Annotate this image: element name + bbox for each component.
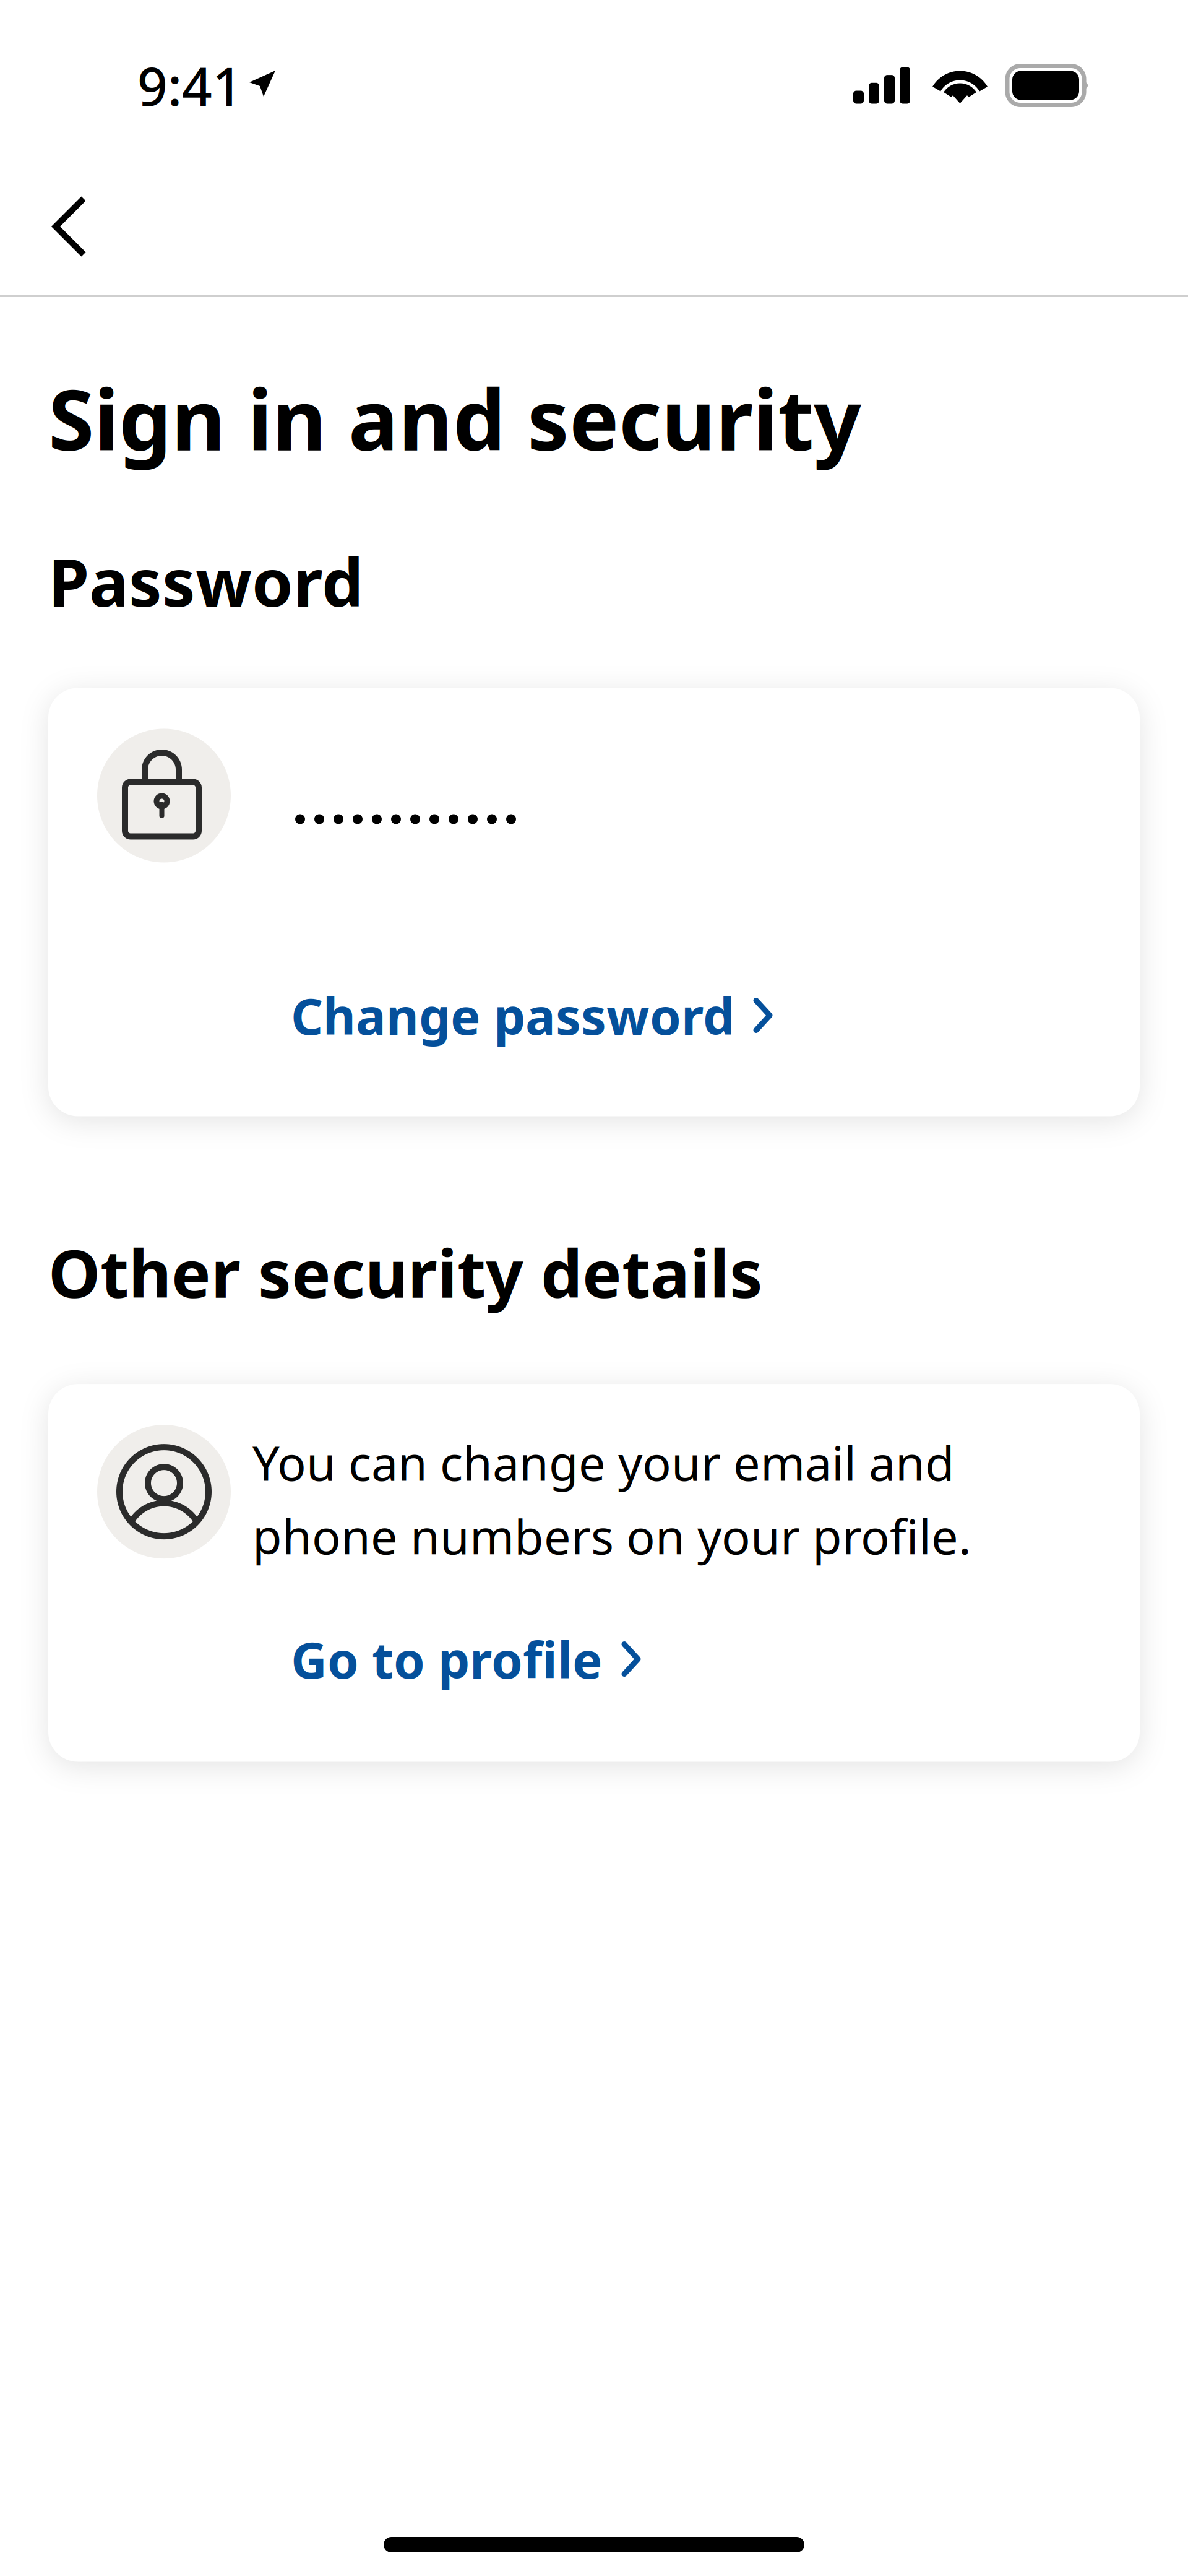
button[interactable]: Back [0, 163, 115, 295]
staticText: Go to profile [291, 1626, 603, 1692]
button[interactable]: Go to profile [291, 1612, 678, 1706]
staticText: 9:41 [137, 50, 243, 120]
staticText: Change password [291, 982, 734, 1049]
staticText: You can change your email and phone numb… [252, 1430, 971, 1567]
staticText: Sign in and security [48, 363, 861, 473]
staticText: Password [48, 537, 363, 625]
staticText: Other security details [48, 1228, 763, 1316]
button[interactable]: Change password [291, 968, 810, 1062]
